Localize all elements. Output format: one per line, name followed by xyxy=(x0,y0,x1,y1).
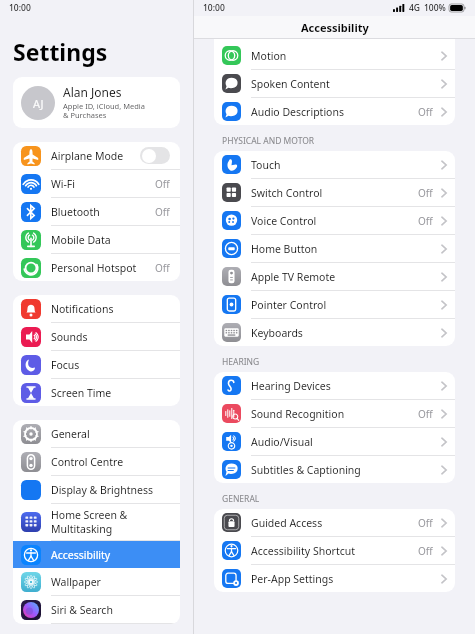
staticText: Off xyxy=(418,516,433,530)
staticText: Focus xyxy=(51,358,170,372)
staticText: PHYSICAL AND MOTOR xyxy=(222,135,315,147)
staticText: Spoken Content xyxy=(251,77,441,91)
staticText: General xyxy=(51,427,170,441)
button[interactable]: Spoken Content xyxy=(214,70,455,97)
button[interactable]: Personal Hotspot xyxy=(13,254,180,281)
staticText: 10:00 xyxy=(203,2,225,14)
button[interactable]: Voice Control xyxy=(214,207,455,234)
staticText: Off xyxy=(155,261,170,275)
staticText: Apple TV Remote xyxy=(251,270,441,284)
button[interactable]: Display & Brightness xyxy=(13,476,180,503)
staticText: Audio Descriptions xyxy=(251,105,418,119)
button[interactable]: Wallpaper xyxy=(13,568,180,595)
staticText: Accessibility Shortcut xyxy=(251,544,418,558)
button[interactable]: Home Screen & Multitasking xyxy=(13,504,180,540)
button[interactable]: Siri & Search xyxy=(13,596,180,623)
staticText: Apple ID, iCloud, Media & Purchases xyxy=(63,101,145,121)
staticText: 4G xyxy=(409,2,421,14)
staticText: Per-App Settings xyxy=(251,572,441,586)
staticText: Accessibility xyxy=(51,548,170,562)
staticText: Home Screen & Multitasking xyxy=(51,508,170,536)
button[interactable]: Touch xyxy=(214,151,455,178)
button[interactable]: Control Centre xyxy=(13,448,180,475)
button[interactable]: Pointer Control xyxy=(214,291,455,318)
staticText: Wallpaper xyxy=(51,575,170,589)
button[interactable]: Audio/Visual xyxy=(214,428,455,455)
staticText: Alan Jones xyxy=(63,84,122,100)
staticText: Mobile Data xyxy=(51,233,170,247)
staticText: Off xyxy=(155,177,170,191)
staticText: Siri & Search xyxy=(51,603,170,617)
staticText: Keyboards xyxy=(251,326,441,340)
button[interactable]: Subtitles & Captioning xyxy=(214,456,455,483)
staticText: Switch Control xyxy=(251,186,418,200)
staticText: Airplane Mode xyxy=(51,149,140,163)
button[interactable]: Sound Recognition xyxy=(214,400,455,427)
button[interactable]: Accessibility xyxy=(13,541,180,568)
staticText: Guided Access xyxy=(251,516,418,530)
button[interactable]: Bluetooth xyxy=(13,198,180,225)
button[interactable]: Airplane Mode xyxy=(13,142,180,169)
staticText: Off xyxy=(155,205,170,219)
staticText: Touch xyxy=(251,158,441,172)
button[interactable]: Per-App Settings xyxy=(214,565,455,592)
staticText: Bluetooth xyxy=(51,205,155,219)
staticText: Hearing Devices xyxy=(251,379,441,393)
staticText: AJ xyxy=(33,96,44,111)
staticText: Notifications xyxy=(51,302,170,316)
button[interactable]: Screen Time xyxy=(13,379,180,406)
button[interactable]: Wi-Fi xyxy=(13,170,180,197)
button[interactable]: Home Button xyxy=(214,235,455,262)
button[interactable]: Motion xyxy=(214,42,455,69)
button[interactable]: Audio Descriptions xyxy=(214,98,455,125)
staticText: Off xyxy=(418,544,433,558)
staticText: 10:00 xyxy=(9,2,31,14)
staticText: Audio/Visual xyxy=(251,435,441,449)
staticText: Motion xyxy=(251,49,441,63)
staticText: Control Centre xyxy=(51,455,170,469)
button[interactable]: General xyxy=(13,420,180,447)
button[interactable]: Apple TV Remote xyxy=(214,263,455,290)
button[interactable]: Guided Access xyxy=(214,509,455,536)
staticText: Personal Hotspot xyxy=(51,261,155,275)
staticText: Off xyxy=(418,186,433,200)
button[interactable]: Keyboards xyxy=(214,319,455,346)
button[interactable]: Accessibility Shortcut xyxy=(214,537,455,564)
button[interactable]: Notifications xyxy=(13,295,180,322)
staticText: Sounds xyxy=(51,330,170,344)
button[interactable]: Mobile Data xyxy=(13,226,180,253)
staticText: Off xyxy=(418,407,433,421)
button[interactable]: Sounds xyxy=(13,323,180,350)
button[interactable]: Switch Control xyxy=(214,179,455,206)
staticText: 100% xyxy=(424,2,446,14)
staticText: HEARING xyxy=(222,356,260,368)
button[interactable]: Focus xyxy=(13,351,180,378)
button[interactable]: Hearing Devices xyxy=(214,372,455,399)
staticText: Pointer Control xyxy=(251,298,441,312)
staticText: Sound Recognition xyxy=(251,407,418,421)
staticText: Display & Brightness xyxy=(51,483,170,497)
staticText: Wi-Fi xyxy=(51,177,155,191)
staticText: Off xyxy=(418,105,433,119)
staticText: Voice Control xyxy=(251,214,418,228)
staticText: Home Button xyxy=(251,242,441,256)
staticText: Subtitles & Captioning xyxy=(251,463,441,477)
staticText: Accessibility xyxy=(301,20,369,35)
staticText: Screen Time xyxy=(51,386,170,400)
staticText: GENERAL xyxy=(222,493,260,505)
staticText: Off xyxy=(418,214,433,228)
button[interactable]: AJ xyxy=(13,77,180,128)
staticText: Settings xyxy=(13,36,108,67)
